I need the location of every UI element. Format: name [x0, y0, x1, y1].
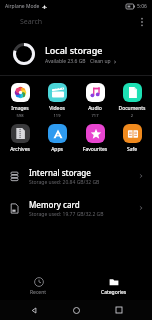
staticText: Images	[2, 105, 38, 112]
staticText: 717	[77, 113, 113, 118]
staticText: Available 23.6 GB	[45, 58, 86, 65]
staticText: Categories	[101, 289, 127, 296]
staticText: Memory card	[29, 199, 80, 210]
staticText: 2	[114, 113, 150, 118]
staticText: Documents	[114, 105, 150, 112]
staticText: Recent	[30, 289, 47, 296]
button[interactable]: Categories	[76, 272, 152, 300]
button[interactable]: Archives	[2, 123, 38, 153]
staticText: Airplane Mode	[5, 3, 40, 10]
staticText: 119	[39, 113, 75, 118]
button[interactable]: Videos	[39, 82, 75, 118]
button[interactable]: Documents	[114, 82, 150, 118]
staticText: Storage used: 19.77 GB/32.2 GB	[29, 211, 104, 218]
button[interactable]: Images	[2, 82, 38, 118]
staticText: Search	[20, 17, 43, 27]
button[interactable]: Home	[67, 301, 85, 319]
staticText: Archives	[2, 146, 38, 153]
staticText: Clean up	[90, 58, 111, 65]
button[interactable]: Recents	[110, 301, 128, 319]
button[interactable]: Audio	[77, 82, 113, 118]
staticText: Favourites	[77, 146, 113, 153]
button[interactable]: Apps	[39, 123, 75, 153]
staticText: 5:06	[137, 3, 147, 10]
staticText: Safe	[114, 146, 150, 153]
button[interactable]: Back	[25, 301, 43, 319]
staticText: Local storage	[45, 44, 103, 56]
staticText: 598	[2, 113, 38, 118]
staticText: Storage used: 20.84 GB/32 GB	[29, 179, 100, 186]
button[interactable]: Favourites	[77, 123, 113, 153]
button[interactable]: Memory card	[0, 195, 152, 221]
button[interactable]: Internal storage	[0, 163, 152, 189]
button[interactable]: Recent	[0, 272, 76, 300]
staticText: Videos	[39, 105, 75, 112]
staticText: Apps	[39, 146, 75, 153]
staticText: Internal storage	[29, 167, 91, 178]
button[interactable]: More options	[132, 12, 152, 32]
button[interactable]: Safe	[114, 123, 150, 153]
button[interactable]: Search	[0, 12, 152, 32]
button[interactable]: Local storage	[0, 36, 152, 72]
staticText: Audio	[77, 105, 113, 112]
